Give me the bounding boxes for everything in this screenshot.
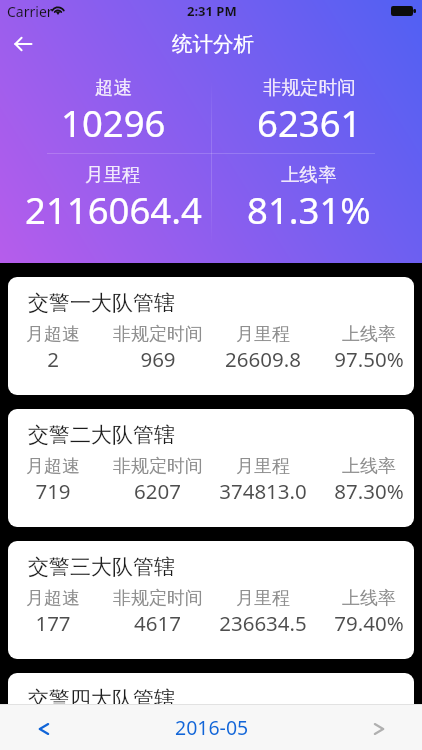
staticText: 月里程 — [236, 323, 290, 346]
staticText: 719 — [35, 477, 71, 505]
staticText: 月里程 — [236, 587, 290, 610]
button[interactable]: 2016-05 — [152, 704, 272, 750]
staticText: 月超速 — [26, 587, 80, 610]
staticText: 62361 — [257, 98, 362, 148]
staticText: Carrier — [7, 2, 53, 21]
staticText: 月超速 — [26, 323, 80, 346]
staticText: 非规定时间 — [113, 719, 203, 742]
staticText: 374813.0 — [219, 477, 307, 505]
staticText: 2 — [47, 345, 59, 373]
button[interactable]: Next month — [357, 706, 401, 750]
staticText: 非规定时间 — [113, 323, 203, 346]
staticText: 交警四大队管辖 — [28, 686, 175, 712]
button[interactable]: Back — [0, 22, 44, 66]
staticText: 超速 — [95, 76, 132, 99]
staticText: 上线率 — [342, 587, 396, 610]
staticText: 上线率 — [342, 323, 396, 346]
staticText: 月里程 — [236, 455, 290, 478]
staticText: 月里程 — [85, 163, 141, 186]
staticText: 177 — [35, 609, 71, 637]
staticText: 交警一大队管辖 — [28, 290, 175, 316]
staticText: 87.30% — [334, 477, 404, 505]
button[interactable]: 交警一大队管辖 — [8, 277, 414, 395]
button[interactable]: Previous month — [22, 706, 66, 750]
staticText: 2:31 PM — [187, 2, 237, 20]
staticText: 非规定时间 — [113, 587, 203, 610]
button[interactable]: 交警三大队管辖 — [8, 541, 414, 659]
staticText: 交警三大队管辖 — [28, 554, 175, 580]
staticText: 10296 — [61, 98, 166, 148]
staticText: 81.31% — [247, 185, 371, 235]
staticText: 6207 — [134, 477, 181, 505]
staticText: 26609.8 — [225, 345, 301, 373]
button[interactable]: 交警四大队管辖 — [8, 673, 414, 750]
button[interactable]: 交警二大队管辖 — [8, 409, 414, 527]
staticText: 月超速 — [26, 455, 80, 478]
staticText: 97.50% — [334, 345, 404, 373]
staticText: 上线率 — [342, 719, 396, 742]
staticText: 79.40% — [334, 609, 404, 637]
staticText: 统计分析 — [172, 31, 254, 57]
staticText: 236634.5 — [219, 609, 307, 637]
staticText: 月超速 — [26, 719, 80, 742]
staticText: 969 — [140, 345, 176, 373]
staticText: 非规定时间 — [263, 76, 356, 99]
staticText: 月里程 — [236, 719, 290, 742]
staticText: 上线率 — [281, 163, 337, 186]
staticText: 交警二大队管辖 — [28, 422, 175, 448]
staticText: 上线率 — [342, 455, 396, 478]
staticText: 2116064.4 — [25, 185, 202, 235]
staticText: 非规定时间 — [113, 455, 203, 478]
staticText: 2016-05 — [175, 714, 249, 741]
staticText: 4617 — [134, 609, 181, 637]
